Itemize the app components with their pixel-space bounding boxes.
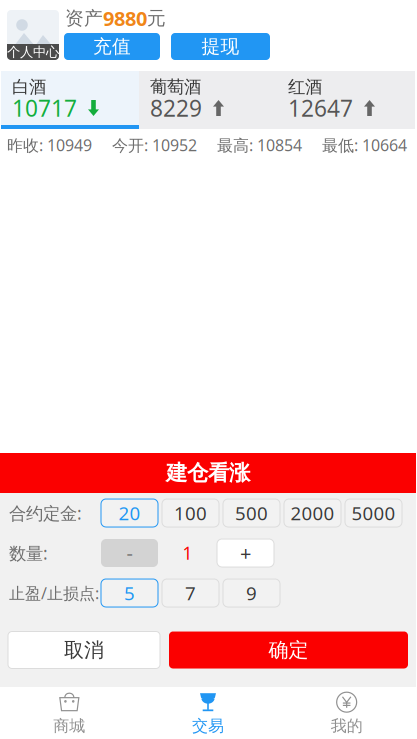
staticText: 12647 [288, 93, 353, 123]
staticText: 100 [174, 501, 207, 525]
button[interactable]: 葡萄酒 [139, 71, 277, 129]
staticText: 红酒 [288, 76, 322, 98]
staticText: 充值 [93, 35, 131, 58]
staticText: 建仓看涨 [166, 460, 250, 486]
staticText: 葡萄酒 [150, 76, 201, 98]
staticText: + [240, 540, 251, 566]
button[interactable]: 商城 [0, 687, 139, 739]
staticText: 交易 [192, 716, 224, 736]
staticText: - [126, 540, 132, 566]
staticText: 10717 [12, 93, 77, 123]
staticText: 数量: [9, 541, 48, 564]
button[interactable]: 确定 [169, 631, 408, 668]
staticText: 9 [246, 581, 257, 605]
button[interactable]: + [217, 539, 274, 567]
button[interactable]: 我的 [277, 687, 416, 739]
staticText: 5 [124, 581, 135, 605]
staticText: 7 [185, 581, 196, 605]
button[interactable]: 白酒 [1, 71, 139, 129]
staticText: 资产 [65, 7, 103, 30]
staticText: 元 [147, 7, 166, 30]
button[interactable]: 5 [101, 579, 158, 607]
staticText: 500 [235, 501, 268, 525]
button[interactable]: 20 [101, 499, 158, 527]
staticText: 10952 [152, 134, 197, 156]
staticText: 今开: [112, 134, 148, 156]
button[interactable]: - [101, 539, 158, 567]
staticText: 5000 [351, 501, 395, 525]
button[interactable]: 取消 [8, 631, 160, 668]
staticText: 止盈/止损点: [9, 582, 99, 604]
staticText: 9880 [103, 5, 147, 32]
staticText: 最低: [322, 134, 358, 156]
staticText: 8229 [150, 93, 202, 123]
button[interactable]: 9 [223, 579, 280, 607]
staticText: 10949 [47, 134, 92, 156]
staticText: 10854 [257, 134, 302, 156]
staticText: 2000 [290, 501, 334, 525]
button[interactable]: 红酒 [277, 71, 415, 129]
staticText: 昨收: [7, 134, 43, 156]
button[interactable]: 2000 [284, 499, 341, 527]
staticText: 10664 [362, 134, 407, 156]
button[interactable]: 5000 [345, 499, 402, 527]
button[interactable]: 500 [223, 499, 280, 527]
staticText: 最高: [217, 134, 253, 156]
button[interactable]: 100 [162, 499, 219, 527]
staticText: 1 [182, 541, 192, 564]
staticText: 个人中心 [7, 44, 59, 60]
staticText: 确定 [268, 638, 308, 662]
staticText: 白酒 [12, 76, 46, 98]
button[interactable]: 提现 [171, 33, 270, 60]
staticText: 提现 [201, 35, 239, 58]
staticText: 商城 [53, 716, 85, 736]
staticText: 取消 [64, 638, 104, 662]
staticText: 合约定金: [9, 501, 82, 524]
staticText: 20 [118, 501, 140, 525]
button[interactable]: 7 [162, 579, 219, 607]
button[interactable]: 建仓看涨 [0, 453, 416, 493]
button[interactable]: 充值 [64, 33, 160, 60]
staticText: 我的 [331, 716, 363, 736]
button[interactable]: 交易 [139, 687, 277, 739]
